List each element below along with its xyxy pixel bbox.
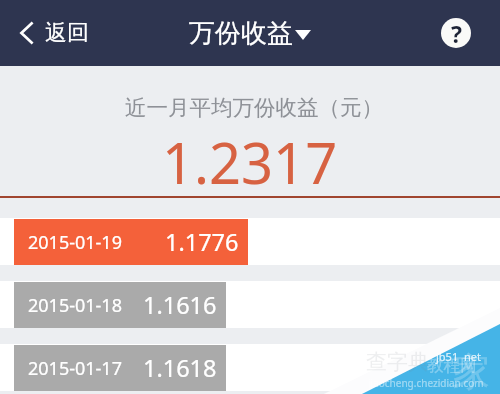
- staticText: 近一月平均万份收益（元）: [125, 94, 383, 121]
- button[interactable]: Help: [441, 18, 471, 48]
- button[interactable]: 2015-01-19: [0, 218, 500, 265]
- staticText: jb51 net: [436, 349, 481, 364]
- staticText: 1.1616: [143, 289, 217, 321]
- staticText: 返回: [45, 19, 89, 47]
- button[interactable]: 返回: [0, 9, 103, 57]
- staticText: 2015-01-17: [28, 356, 122, 381]
- staticText: 1.2317: [162, 124, 338, 200]
- staticText: 1.1618: [143, 352, 217, 384]
- staticText: jiaocheng.chezidian.com: [368, 376, 484, 390]
- button[interactable]: 2015-01-17: [0, 344, 500, 391]
- button[interactable]: 万份收益: [189, 17, 311, 50]
- staticText: ?: [451, 18, 462, 48]
- staticText: 查字典: [366, 349, 429, 375]
- staticText: 1.1776: [165, 226, 239, 258]
- staticText: 万份收益: [189, 17, 293, 50]
- staticText: 2015-01-19: [28, 230, 122, 255]
- staticText: 家: [452, 348, 490, 394]
- staticText: 2015-01-18: [28, 293, 122, 318]
- staticText: 教程网: [427, 355, 477, 376]
- button[interactable]: 2015-01-18: [0, 281, 500, 328]
